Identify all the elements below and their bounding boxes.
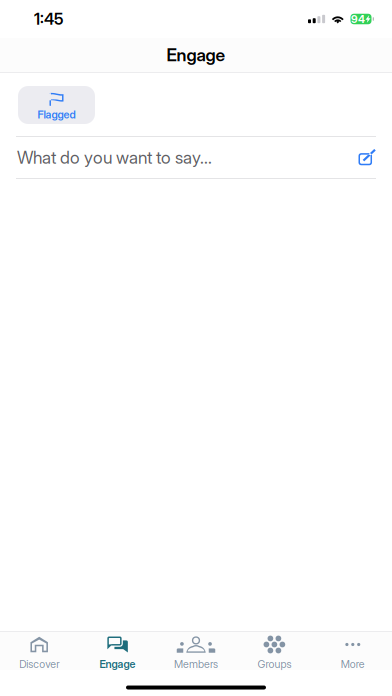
staticText: Members [174, 657, 218, 670]
staticText: Engage [100, 657, 136, 670]
staticText: 1:45 [34, 9, 63, 29]
staticText: 94 [351, 12, 365, 25]
staticText: Engage [166, 44, 225, 65]
button[interactable]: Discover [0, 632, 78, 670]
button[interactable]: Members [157, 632, 235, 670]
staticText: Discover [19, 657, 59, 670]
staticText: More [341, 657, 365, 670]
button[interactable]: Flagged [18, 86, 95, 124]
button[interactable]: Groups [235, 632, 314, 670]
button[interactable]: More [314, 632, 392, 670]
staticText: Flagged [37, 108, 75, 121]
staticText: What do you want to say... [17, 147, 212, 168]
button[interactable]: What do you want to say... [0, 137, 392, 178]
button[interactable]: Engage [78, 632, 157, 670]
staticText: Groups [257, 657, 291, 670]
